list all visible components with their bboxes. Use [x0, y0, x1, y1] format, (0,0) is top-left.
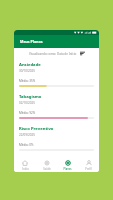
staticText: 22/09/2025	[19, 133, 35, 137]
staticText: Média: 35%	[19, 79, 36, 83]
staticText: Visualizando como: Data de Início	[29, 52, 77, 56]
button[interactable]: Início	[14, 157, 36, 172]
button[interactable]: Tabagismo	[14, 91, 99, 123]
staticText: Risco Preventivo	[19, 126, 54, 132]
staticText: Média: 92%	[19, 111, 36, 115]
staticText: Tabagismo	[19, 94, 42, 100]
staticText: Média: 0%	[19, 143, 34, 147]
button[interactable]: Ordenar	[80, 51, 85, 56]
staticText: Saúde	[43, 167, 51, 171]
staticText: Perfil	[85, 167, 92, 171]
staticText: 30/10/2025	[19, 69, 35, 73]
button[interactable]: Planos	[57, 157, 78, 172]
button[interactable]: Perfil	[78, 157, 99, 172]
button[interactable]: Ansiedade	[14, 59, 99, 91]
staticText: Meus Planos	[20, 39, 43, 44]
staticText: 02/10/2025	[19, 101, 35, 105]
staticText: Ansiedade	[19, 62, 41, 68]
button[interactable]: Saúde	[36, 157, 57, 172]
staticText: Planos	[63, 167, 72, 171]
staticText: Início	[22, 167, 29, 171]
button[interactable]: Risco Preventivo	[14, 123, 99, 155]
